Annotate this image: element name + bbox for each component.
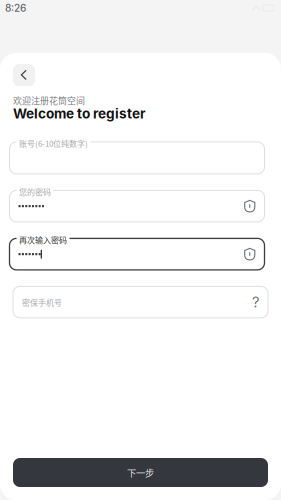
staticText: 下一步 [127, 466, 154, 479]
staticText: 8:26 [5, 2, 26, 14]
staticText: 欢迎注册花筒空间 [13, 94, 85, 107]
staticText: 账号(6-10位纯数字) [19, 137, 88, 149]
staticText: 密保手机号 [22, 296, 62, 308]
staticText: 再次输入密码 [19, 234, 67, 245]
staticText: Welcome to register [13, 105, 146, 122]
button[interactable]: 下一步 [13, 458, 268, 487]
button[interactable]: Back [13, 64, 35, 86]
staticText: 您的密码 [19, 186, 51, 197]
staticText: ? [252, 293, 259, 311]
